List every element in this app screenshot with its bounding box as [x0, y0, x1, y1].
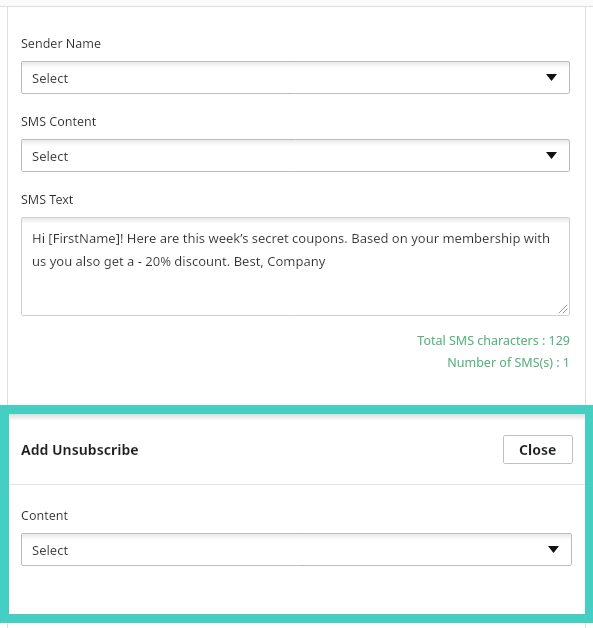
staticText: Select: [32, 541, 69, 559]
staticText: Total SMS characters : 129: [21, 332, 570, 349]
button[interactable]: Select: [21, 139, 570, 172]
staticText: SMS Text: [21, 191, 74, 208]
staticText: Select: [32, 69, 69, 87]
staticText: Close: [519, 440, 557, 459]
button[interactable]: Close: [503, 435, 573, 464]
staticText: Hi [FirstName]! Here are this week’s sec…: [32, 229, 556, 270]
staticText: Content: [21, 507, 68, 524]
staticText: Sender Name: [21, 35, 102, 52]
staticText: Number of SMS(s) : 1: [21, 354, 570, 371]
staticText: SMS Content: [21, 113, 97, 130]
button[interactable]: Select: [21, 61, 570, 94]
button[interactable]: Select: [21, 533, 572, 566]
button[interactable]: Hi [FirstName]! Here are this week’s sec…: [21, 217, 570, 316]
staticText: Select: [32, 147, 69, 165]
staticText: Add Unsubscribe: [21, 440, 139, 459]
